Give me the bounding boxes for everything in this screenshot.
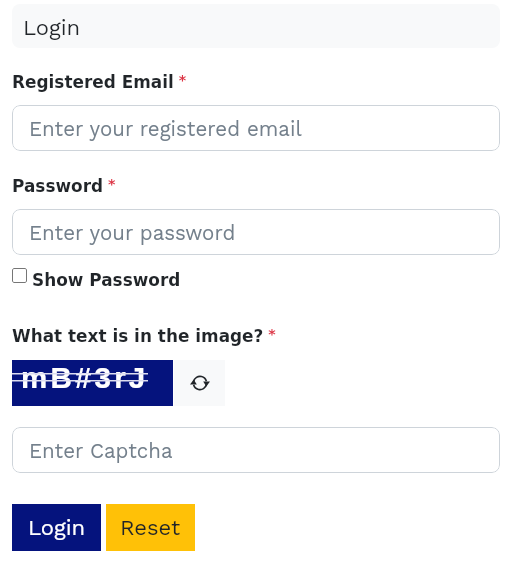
button[interactable]: Show Password xyxy=(12,266,183,287)
staticText: Enter Captcha xyxy=(29,439,173,463)
button[interactable]: Enter your registered email xyxy=(12,105,500,151)
button[interactable]: Enter Captcha xyxy=(12,427,500,473)
staticText: What text is in the image? * xyxy=(12,326,276,346)
staticText: Login xyxy=(28,515,86,541)
button[interactable]: Enter your password xyxy=(12,209,500,255)
staticText: Reset xyxy=(120,515,181,541)
staticText: mB#3rJ xyxy=(21,361,149,394)
button[interactable]: Login xyxy=(12,504,101,551)
staticText: Enter your password xyxy=(29,221,236,245)
staticText: Enter your registered email xyxy=(29,117,302,141)
button[interactable]: Reset xyxy=(106,504,195,551)
staticText: Registered Email * xyxy=(12,72,187,92)
staticText: Login xyxy=(23,15,81,41)
button[interactable]: Refresh captcha xyxy=(174,360,225,406)
staticText: Show Password xyxy=(32,270,181,290)
staticText: Password * xyxy=(12,176,116,196)
